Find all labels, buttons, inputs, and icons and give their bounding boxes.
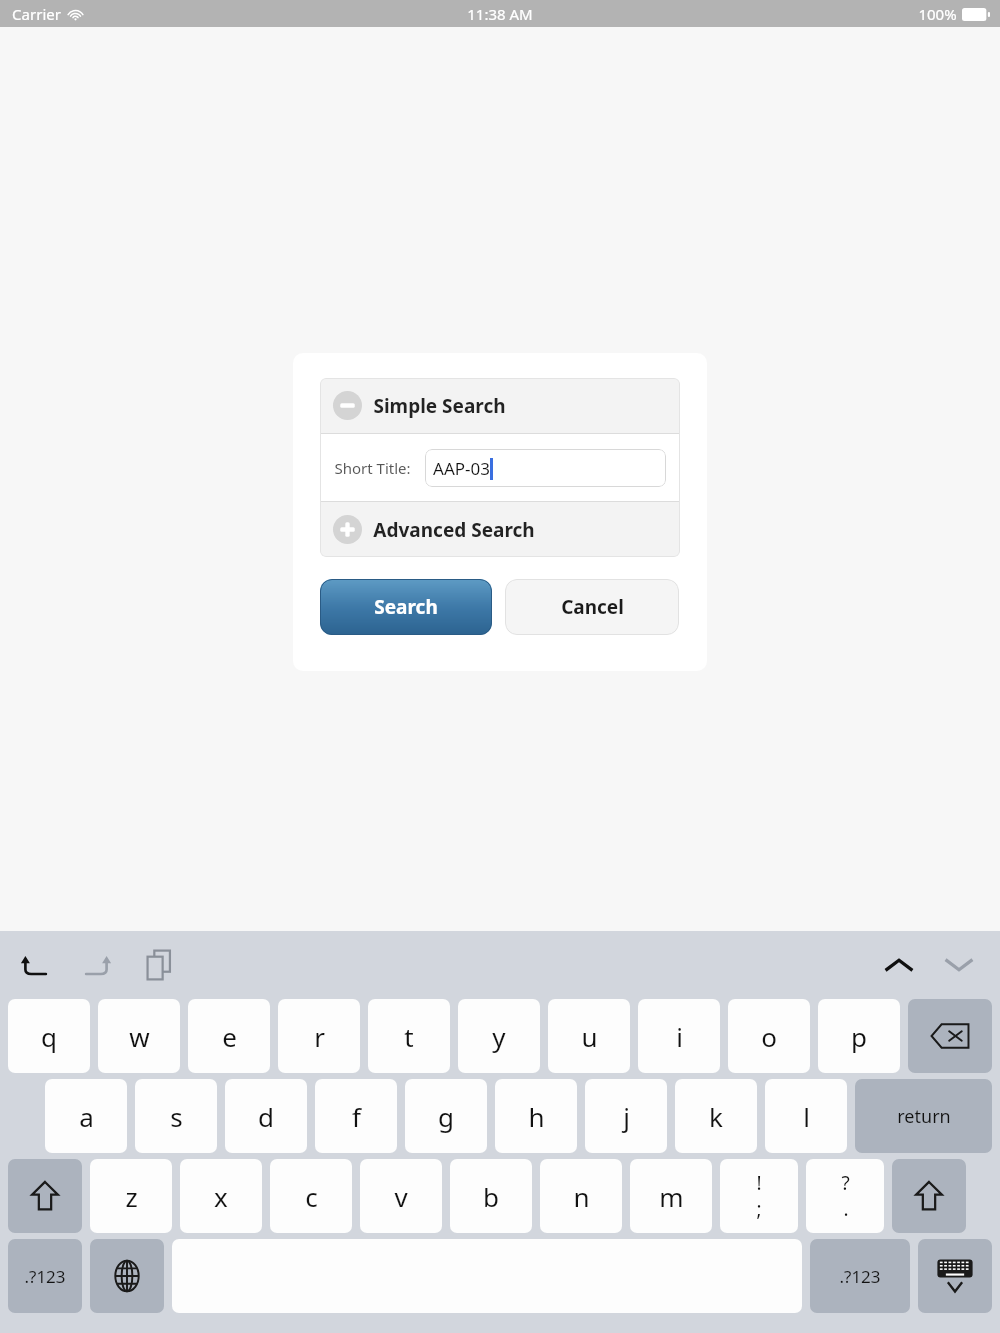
staticText: j <box>623 1099 630 1134</box>
button[interactable]: Next field <box>938 944 980 986</box>
staticText: w <box>129 1019 150 1054</box>
staticText: x <box>214 1179 228 1214</box>
staticText: ? <box>841 1170 850 1196</box>
staticText: a <box>79 1099 94 1134</box>
button[interactable]: .?123 <box>8 1239 82 1313</box>
other: Collapse section <box>333 391 362 420</box>
staticText: z <box>125 1179 138 1214</box>
button[interactable]: Expand section <box>320 502 680 557</box>
staticText: .?123 <box>24 1265 66 1288</box>
button[interactable]: a <box>45 1079 127 1153</box>
button[interactable]: h <box>495 1079 577 1153</box>
button[interactable]: l <box>765 1079 847 1153</box>
staticText: r <box>314 1019 325 1054</box>
button[interactable]: AAP-03 <box>425 449 666 487</box>
staticText: d <box>258 1099 274 1134</box>
staticText: Short Title: <box>334 458 411 478</box>
button[interactable]: g <box>405 1079 487 1153</box>
button[interactable]: q <box>8 999 90 1073</box>
staticText: f <box>352 1099 361 1134</box>
staticText: s <box>170 1099 183 1134</box>
button[interactable]: Backspace <box>908 999 992 1073</box>
staticText: i <box>676 1019 683 1054</box>
staticText: e <box>222 1019 237 1054</box>
button[interactable]: Cancel <box>505 579 679 635</box>
staticText: t <box>404 1019 414 1054</box>
staticText: n <box>573 1179 590 1214</box>
staticText: u <box>581 1019 598 1054</box>
staticText: m <box>659 1179 684 1214</box>
staticText: Carrier <box>12 4 61 24</box>
button[interactable]: Paste <box>138 944 180 986</box>
button[interactable]: y <box>458 999 540 1073</box>
staticText: 11:38 AM <box>467 4 533 24</box>
staticText: ! <box>756 1170 762 1196</box>
button[interactable]: v <box>360 1159 442 1233</box>
button[interactable]: Search <box>320 579 492 635</box>
button[interactable]: Shift <box>892 1159 966 1233</box>
button[interactable]: o <box>728 999 810 1073</box>
button[interactable]: p <box>818 999 900 1073</box>
staticText: c <box>305 1179 318 1214</box>
button[interactable]: ? <box>806 1159 884 1233</box>
staticText: y <box>492 1019 506 1054</box>
staticText: q <box>41 1019 57 1054</box>
button[interactable]: k <box>675 1079 757 1153</box>
staticText: h <box>528 1099 545 1134</box>
staticText: b <box>483 1179 499 1214</box>
staticText: k <box>709 1099 723 1134</box>
staticText: v <box>394 1179 408 1214</box>
staticText: .?123 <box>839 1265 881 1288</box>
button[interactable]: x <box>180 1159 262 1233</box>
staticText: Search <box>374 594 438 620</box>
button[interactable]: f <box>315 1079 397 1153</box>
staticText: Cancel <box>561 594 624 620</box>
button[interactable]: ! <box>720 1159 798 1233</box>
staticText: Advanced Search <box>373 517 535 543</box>
button[interactable]: Redo <box>76 944 118 986</box>
button[interactable]: Shift <box>8 1159 82 1233</box>
button[interactable]: m <box>630 1159 712 1233</box>
button[interactable]: e <box>188 999 270 1073</box>
button[interactable]: s <box>135 1079 217 1153</box>
button[interactable]: r <box>278 999 360 1073</box>
button[interactable]: b <box>450 1159 532 1233</box>
staticText: ; <box>756 1196 762 1222</box>
button[interactable]: n <box>540 1159 622 1233</box>
staticText: 100% <box>918 4 957 24</box>
button[interactable]: i <box>638 999 720 1073</box>
button[interactable]: Switch keyboard <box>90 1239 164 1313</box>
staticText: o <box>761 1019 777 1054</box>
button[interactable]: Previous field <box>878 944 920 986</box>
staticText: l <box>803 1099 810 1134</box>
button[interactable]: j <box>585 1079 667 1153</box>
button[interactable]: Hide keyboard <box>918 1239 992 1313</box>
staticText: g <box>438 1099 454 1134</box>
button[interactable]: t <box>368 999 450 1073</box>
button[interactable]: z <box>90 1159 172 1233</box>
button[interactable]: Undo <box>14 944 56 986</box>
staticText: . <box>843 1196 849 1222</box>
button[interactable]: .?123 <box>810 1239 910 1313</box>
button[interactable]: u <box>548 999 630 1073</box>
staticText: AAP-03 <box>433 457 490 480</box>
staticText: Simple Search <box>373 393 506 419</box>
button[interactable]: return <box>855 1079 992 1153</box>
button[interactable]: Collapse section <box>320 378 680 433</box>
button[interactable]: w <box>98 999 180 1073</box>
button[interactable]: c <box>270 1159 352 1233</box>
staticText: p <box>851 1019 867 1054</box>
other: Expand section <box>333 515 362 544</box>
staticText: return <box>897 1104 951 1129</box>
button[interactable]: d <box>225 1079 307 1153</box>
